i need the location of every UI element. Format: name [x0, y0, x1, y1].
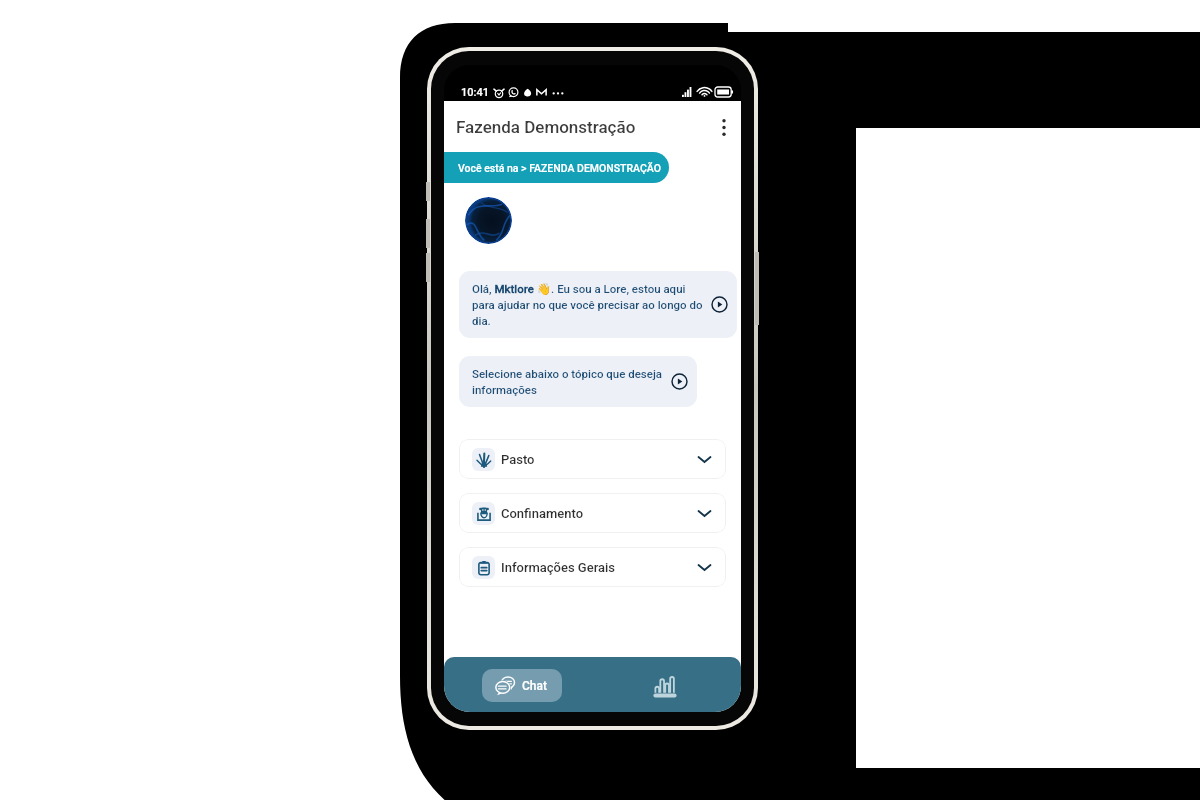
staticText: Informações Gerais	[501, 560, 616, 575]
button[interactable]: Reports	[647, 667, 683, 703]
staticText: Selecione abaixo o tópico que deseja inf…	[472, 367, 664, 396]
button[interactable]: More options	[707, 110, 741, 144]
staticText: Chat	[522, 679, 547, 693]
button[interactable]: Chat	[482, 669, 562, 702]
staticText: 10:41	[461, 86, 489, 98]
button[interactable]: Pasto	[459, 439, 726, 479]
button[interactable]: Informações Gerais	[459, 547, 726, 587]
staticText: Pasto	[501, 452, 535, 467]
staticText: Olá, Mktlore 👋. Eu sou a Lore, estou aqu…	[472, 282, 704, 327]
button[interactable]: Confinamento	[459, 493, 726, 533]
button[interactable]: Olá, Mktlore 👋. Eu sou a Lore, estou aqu…	[459, 271, 737, 338]
staticText: Você está na > FAZENDA DEMONSTRAÇÃO	[458, 162, 661, 174]
staticText: Confinamento	[501, 506, 584, 521]
staticText: Fazenda Demonstração	[456, 117, 636, 137]
button[interactable]: Selecione abaixo o tópico que deseja inf…	[459, 356, 697, 407]
button[interactable]: Você está na > FAZENDA DEMONSTRAÇÃO	[444, 152, 669, 183]
